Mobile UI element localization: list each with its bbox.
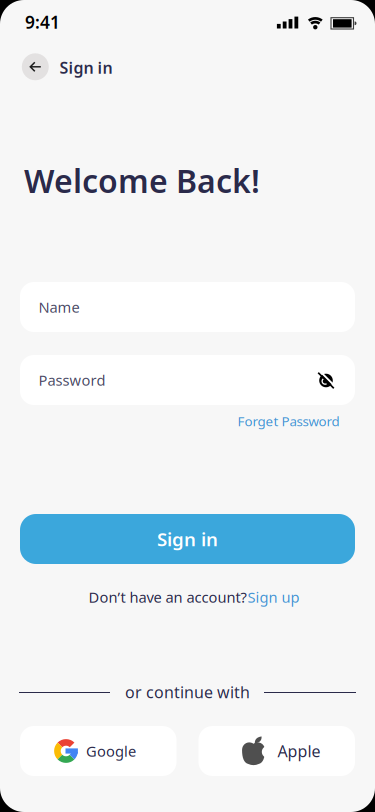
staticText: Sign in bbox=[157, 527, 218, 551]
staticText: or continue with bbox=[125, 681, 250, 703]
button[interactable]: Sign up bbox=[247, 587, 299, 607]
staticText: Forget Password bbox=[237, 412, 339, 430]
staticText: Google bbox=[86, 741, 136, 761]
staticText: Password bbox=[38, 370, 105, 390]
staticText: Welcome Back! bbox=[24, 159, 260, 202]
button[interactable]: Back bbox=[21, 53, 49, 81]
button[interactable]: Password bbox=[20, 355, 355, 405]
staticText: 9:41 bbox=[25, 10, 60, 33]
staticText: Apple bbox=[277, 740, 320, 762]
staticText: Sign up bbox=[247, 587, 299, 607]
button[interactable]: Forget Password bbox=[237, 412, 339, 430]
staticText: Don’t have an account? bbox=[88, 587, 246, 607]
button[interactable]: Name bbox=[20, 282, 355, 332]
button[interactable]: Show password bbox=[312, 366, 340, 394]
button[interactable]: Google bbox=[20, 726, 176, 776]
button[interactable]: Apple bbox=[198, 726, 355, 776]
staticText: Name bbox=[38, 297, 79, 317]
button[interactable]: Sign in bbox=[20, 514, 355, 564]
staticText: Sign in bbox=[59, 57, 112, 78]
